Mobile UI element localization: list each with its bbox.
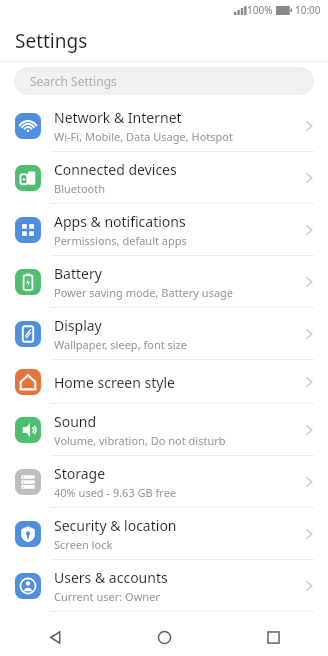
staticText: Network & Internet (54, 108, 182, 127)
staticText: Home screen style (54, 373, 175, 392)
staticText: Users & accounts (54, 568, 168, 587)
staticText: 40% used - 9.63 GB free (54, 485, 177, 500)
staticText: Current user: Owner (54, 589, 160, 604)
staticText: Apps & notifications (54, 212, 186, 231)
staticText: Bluetooth (54, 181, 106, 196)
button[interactable]: Storage (0, 456, 328, 508)
staticText: Display (54, 316, 102, 335)
staticText: Connected devices (54, 160, 177, 179)
staticText: Wi-Fi, Mobile, Data Usage, Hotspot (54, 129, 233, 144)
staticText: Permissions, default apps (54, 233, 187, 248)
staticText: Sound (54, 412, 97, 431)
button[interactable]: Home screen style (0, 360, 328, 404)
staticText: Wallpaper, sleep, font size (54, 337, 187, 352)
staticText: Settings (15, 28, 88, 54)
staticText: 100% (247, 3, 273, 17)
staticText: 10:00 (295, 3, 321, 17)
staticText: Search Settings (30, 73, 117, 89)
button[interactable]: Connected devices (0, 152, 328, 204)
staticText: Power saving mode, Battery usage (54, 285, 234, 300)
button[interactable]: Users & accounts (0, 560, 328, 612)
button[interactable]: Home (110, 618, 219, 656)
staticText: Battery (54, 264, 102, 283)
staticText: Storage (54, 464, 106, 483)
button[interactable]: Search Settings (14, 67, 314, 95)
button[interactable]: Recent apps (219, 618, 328, 656)
button[interactable]: Display (0, 308, 328, 360)
staticText: Screen lock (54, 537, 113, 552)
staticText: Security & location (54, 516, 177, 535)
button[interactable]: Apps & notifications (0, 204, 328, 256)
button[interactable]: Back (0, 618, 110, 656)
staticText: Volume, vibration, Do not disturb (54, 433, 226, 448)
button[interactable]: Security & location (0, 508, 328, 560)
button[interactable]: Network & Internet (0, 100, 328, 152)
button[interactable]: Battery (0, 256, 328, 308)
button[interactable]: Sound (0, 404, 328, 456)
